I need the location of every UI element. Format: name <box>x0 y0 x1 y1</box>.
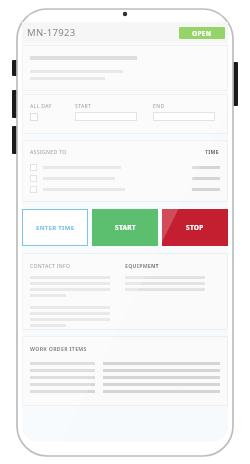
button[interactable]: ENTER TIME <box>22 209 88 246</box>
staticText: MN-17923 <box>27 26 76 39</box>
button[interactable]: START <box>92 209 158 246</box>
button[interactable] <box>30 184 220 195</box>
staticText: START <box>75 102 92 109</box>
button[interactable]: Start time <box>75 112 137 121</box>
staticText: WORK ORDER ITEMS <box>30 345 87 352</box>
button[interactable] <box>30 173 220 184</box>
button[interactable]: End time <box>153 112 215 121</box>
staticText: EQUIPMENT <box>125 262 159 269</box>
staticText: CONTACT INFO <box>30 262 71 269</box>
button[interactable] <box>30 162 220 173</box>
staticText: END <box>153 102 165 109</box>
staticText: ALL DAY <box>30 102 52 109</box>
staticText: OPEN <box>192 29 212 38</box>
button[interactable]: All day <box>30 113 38 121</box>
button[interactable]: OPEN <box>179 27 225 39</box>
staticText: START <box>115 223 136 232</box>
staticText: ENTER TIME <box>36 224 75 232</box>
staticText: STOP <box>186 223 204 232</box>
button[interactable]: STOP <box>162 209 228 246</box>
staticText: ASSIGNED TO <box>30 148 67 155</box>
staticText: TIME <box>205 148 220 155</box>
